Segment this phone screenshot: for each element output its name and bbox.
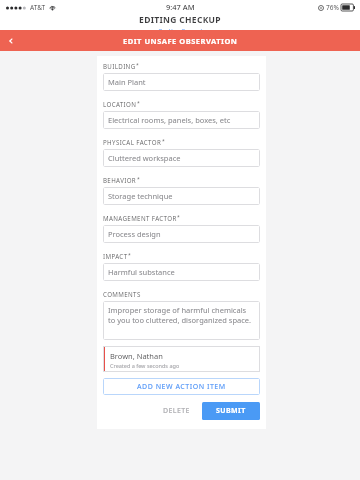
staticText: ADD NEW ACTION ITEM (137, 382, 226, 392)
staticText: Quality · General (158, 27, 202, 30)
staticText: Cluttered workspace (108, 153, 181, 163)
staticText: * (136, 62, 139, 69)
staticText: AT&T (30, 3, 46, 12)
staticText: BUILDING (103, 62, 136, 70)
staticText: EDIT UNSAFE OBSERVATION (123, 36, 238, 46)
staticText: Electrical rooms, panels, boxes, etc (108, 115, 231, 125)
staticText: Created a few seconds ago (110, 362, 180, 369)
button[interactable]: Back (0, 30, 21, 51)
staticText: PHYSICAL FACTOR (103, 138, 162, 146)
staticText: 76% (326, 3, 339, 12)
staticText: Process design (108, 229, 161, 239)
staticText: EDITING CHECKUP (139, 14, 221, 26)
staticText: MANAGEMENT FACTOR (103, 214, 177, 222)
button[interactable]: Electrical rooms, panels, boxes, etc (103, 111, 260, 129)
button[interactable]: Cluttered workspace (103, 149, 260, 167)
button[interactable]: SUBMIT (202, 402, 260, 420)
staticText: * (162, 138, 165, 145)
staticText: BEHAVIOR (103, 176, 137, 184)
staticText: Improper storage of harmful chemicals to… (108, 305, 255, 325)
button[interactable]: Improper storage of harmful chemicals to… (103, 301, 260, 340)
staticText: * (128, 252, 131, 259)
staticText: Main Plant (108, 77, 146, 87)
staticText: COMMENTS (103, 290, 141, 298)
staticText: Storage technique (108, 191, 173, 201)
staticText: Brown, Nathan (110, 351, 163, 361)
staticText: * (137, 100, 140, 107)
button[interactable]: Brown, Nathan (103, 346, 260, 372)
staticText: DELETE (163, 406, 190, 416)
staticText: * (137, 176, 140, 183)
staticText: SUBMIT (216, 406, 246, 416)
button[interactable]: DELETE (155, 402, 198, 420)
button[interactable]: Main Plant (103, 73, 260, 91)
button[interactable]: Storage technique (103, 187, 260, 205)
button[interactable]: Process design (103, 225, 260, 243)
button[interactable]: Harmful substance (103, 263, 260, 281)
staticText: * (177, 214, 180, 221)
staticText: 9:47 AM (166, 2, 195, 12)
staticText: Harmful substance (108, 267, 175, 277)
button[interactable]: ADD NEW ACTION ITEM (103, 378, 260, 395)
staticText: IMPACT (103, 252, 128, 260)
staticText: LOCATION (103, 100, 137, 108)
